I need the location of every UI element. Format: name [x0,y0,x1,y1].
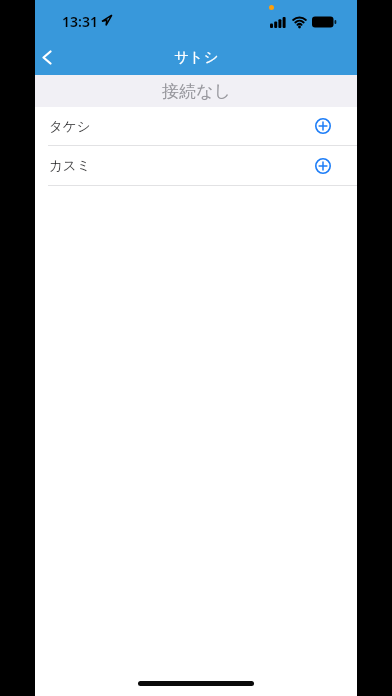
staticText: 接続なし [162,81,231,102]
staticText: サトシ [174,48,219,66]
button[interactable] [35,40,59,74]
button[interactable]: タケシ [35,107,357,145]
button[interactable]: カスミ [35,146,357,185]
staticText: タケシ [49,118,91,135]
staticText: カスミ [49,157,91,174]
staticText: 13:31 [62,12,98,31]
